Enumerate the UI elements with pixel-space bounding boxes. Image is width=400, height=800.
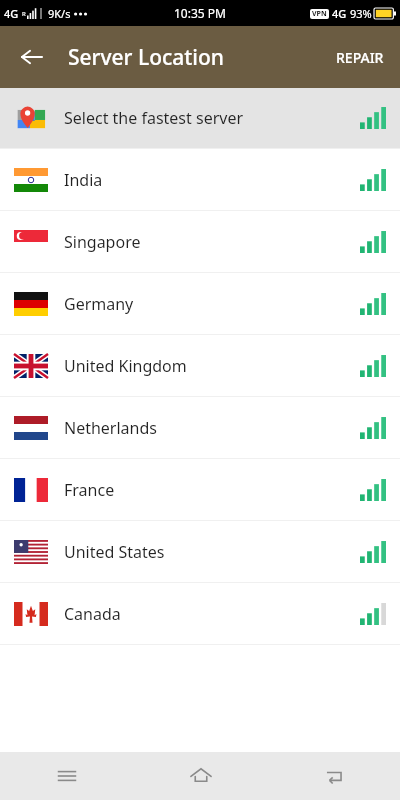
button[interactable]: Canada (0, 583, 400, 644)
button[interactable]: Germany (0, 273, 400, 334)
button[interactable]: Home (134, 752, 267, 800)
staticText: United States (64, 541, 165, 563)
button[interactable]: Recent apps (0, 752, 134, 800)
button[interactable]: REPAIR (326, 38, 394, 77)
staticText: 4G (4, 6, 19, 21)
button[interactable]: Singapore (0, 211, 400, 272)
button[interactable]: India (0, 149, 400, 210)
staticText: India (64, 169, 103, 191)
staticText: 10:35 PM (174, 5, 226, 21)
staticText: Select the fastest server (64, 107, 244, 129)
staticText: France (64, 479, 115, 501)
button[interactable]: United States (0, 521, 400, 582)
button[interactable]: Netherlands (0, 397, 400, 458)
staticText: United Kingdom (64, 355, 187, 377)
staticText: Netherlands (64, 417, 157, 439)
staticText: 4G (332, 6, 347, 21)
button[interactable]: United Kingdom (0, 335, 400, 396)
button[interactable]: Back (267, 752, 400, 800)
button[interactable]: Back (8, 33, 56, 81)
staticText: Germany (64, 293, 134, 315)
staticText: Server Location (68, 43, 225, 72)
staticText: REPAIR (336, 48, 384, 67)
staticText: 93% (350, 6, 372, 21)
button[interactable]: Select the fastest server (0, 88, 400, 148)
staticText: Singapore (64, 231, 141, 253)
button[interactable]: France (0, 459, 400, 520)
staticText: Canada (64, 603, 121, 625)
staticText: VPN (312, 9, 327, 19)
staticText: R (22, 10, 26, 18)
staticText: 9K/s (48, 6, 71, 21)
